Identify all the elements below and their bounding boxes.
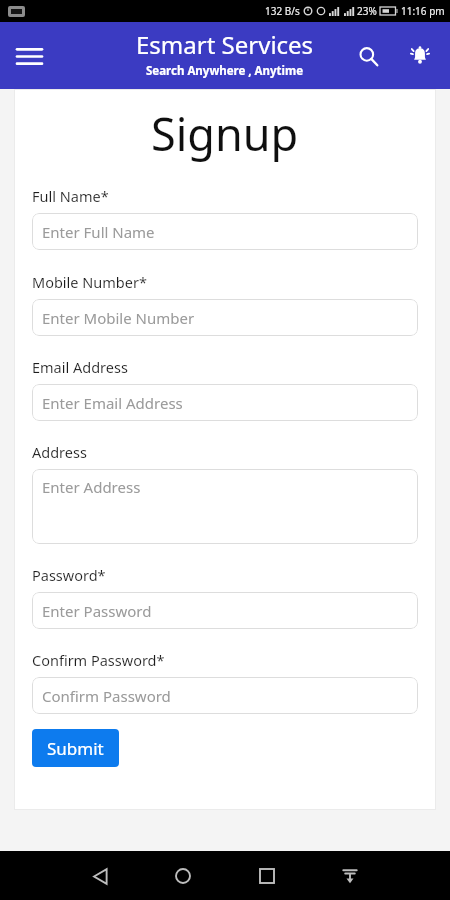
button[interactable]: Confirm Password — [32, 677, 418, 714]
staticText: Password* — [32, 565, 106, 585]
staticText: Enter Email Address — [42, 393, 183, 413]
staticText: Mobile Number* — [32, 272, 147, 292]
button[interactable]: Enter Mobile Number — [32, 299, 418, 336]
button[interactable]: Home — [163, 856, 203, 896]
button[interactable]: Submit — [32, 729, 119, 767]
staticText: Signup — [151, 103, 299, 164]
button[interactable]: Enter Address — [32, 469, 418, 544]
button[interactable]: Open navigation menu — [7, 34, 51, 78]
button[interactable]: Notifications — [398, 34, 442, 78]
staticText: Esmart Services — [136, 28, 314, 61]
button[interactable]: Search — [346, 34, 390, 78]
staticText: Email Address — [32, 357, 128, 377]
staticText: Full Name* — [32, 186, 109, 206]
staticText: Search Anywhere , Anytime — [146, 63, 304, 79]
button[interactable]: Enter Password — [32, 592, 418, 629]
staticText: Enter Mobile Number — [42, 308, 195, 328]
staticText: Confirm Password — [42, 686, 171, 706]
button[interactable]: Hide navigation bar — [330, 856, 370, 896]
button[interactable]: Enter Full Name — [32, 213, 418, 250]
button[interactable]: Recent apps — [247, 856, 287, 896]
staticText: Address — [32, 442, 87, 462]
staticText: Enter Address — [42, 477, 141, 497]
button[interactable]: Enter Email Address — [32, 384, 418, 421]
staticText: Confirm Password* — [32, 650, 165, 670]
staticText: 23% — [357, 4, 377, 18]
button[interactable]: Back — [80, 856, 120, 896]
staticText: Enter Full Name — [42, 222, 155, 242]
staticText: 11:16 pm — [401, 4, 445, 18]
staticText: Submit — [47, 737, 104, 760]
staticText: 132 B/s — [265, 4, 300, 18]
staticText: Enter Password — [42, 601, 152, 621]
